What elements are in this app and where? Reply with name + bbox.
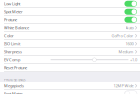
- button[interactable]: EV Comp: [0, 56, 140, 64]
- staticText: PHOTO SETTINGS: [4, 78, 25, 82]
- staticText: Sharpness: [4, 49, 22, 54]
- button[interactable]: White Balance: [0, 24, 140, 32]
- staticText: 1600: [125, 41, 133, 46]
- staticText: Auto: [125, 25, 133, 30]
- button[interactable]: ISO Limit: [0, 40, 140, 48]
- button[interactable]: Reset Protune: [0, 64, 140, 72]
- button[interactable]: Protune: [0, 16, 140, 24]
- staticText: Medium: [118, 49, 133, 54]
- staticText: Megapixels: [4, 83, 24, 88]
- button[interactable]: Spot Meter: [0, 8, 140, 16]
- staticText: GoPro Color: [111, 33, 133, 38]
- staticText: ISO Limit: [4, 41, 20, 46]
- staticText: Spot Meter: [4, 9, 23, 14]
- staticText: Spot Meter: [4, 91, 23, 94]
- button[interactable]: Spot Meter: [0, 90, 140, 94]
- staticText: EV Comp: [4, 57, 20, 62]
- button[interactable]: Megapixels: [0, 82, 140, 90]
- button[interactable]: Color: [0, 32, 140, 40]
- staticText: White Balance: [4, 25, 29, 30]
- staticText: +1.0: [130, 57, 137, 62]
- staticText: Low Light: [4, 1, 20, 6]
- staticText: Reset Protune: [4, 65, 27, 70]
- button[interactable]: Sharpness: [0, 48, 140, 56]
- staticText: Protune: [4, 17, 17, 22]
- button[interactable]: Low Light: [0, 0, 140, 8]
- staticText: Color: [4, 33, 14, 38]
- staticText: 12MP Wide: [113, 83, 133, 88]
